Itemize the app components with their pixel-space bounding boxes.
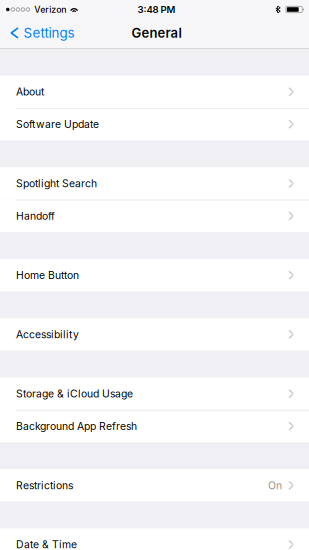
staticText: General [131,25,181,41]
staticText: Restrictions [16,479,73,492]
staticText: 3:48 PM [138,4,176,15]
staticText: Software Update [16,118,99,130]
button[interactable]: Storage & iCloud Usage [0,377,309,410]
staticText: About [16,85,44,98]
button[interactable]: Settings [0,19,82,47]
staticText: Home Button [16,269,79,281]
button[interactable]: Software Update [0,108,309,140]
staticText: Settings [23,25,74,41]
button[interactable]: Spotlight Search [0,167,309,200]
button[interactable]: Home Button [0,259,309,291]
button[interactable]: Handoff [0,200,309,232]
button[interactable]: Accessibility [0,318,309,351]
staticText: Handoff [16,210,55,222]
staticText: Storage & iCloud Usage [16,387,133,400]
staticText: Date & Time [16,538,77,550]
staticText: Spotlight Search [16,177,97,190]
staticText: Background App Refresh [16,420,137,432]
staticText: Accessibility [16,328,79,341]
staticText: Verizon [34,4,66,15]
button[interactable]: About [0,75,309,108]
button[interactable]: Restrictions [0,469,309,502]
button[interactable]: Date & Time [0,528,309,550]
button[interactable]: Background App Refresh [0,410,309,442]
staticText: On [268,479,282,492]
